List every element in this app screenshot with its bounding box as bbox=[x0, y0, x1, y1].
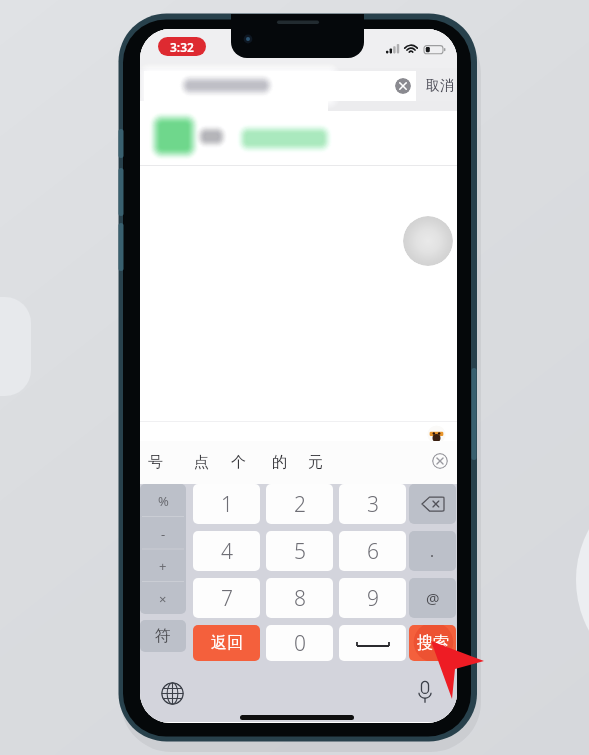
button[interactable]: . bbox=[409, 531, 456, 571]
button[interactable]: % bbox=[140, 484, 186, 517]
staticText: + bbox=[159, 557, 167, 575]
staticText: % bbox=[158, 492, 169, 510]
button[interactable]: 6 bbox=[339, 531, 406, 571]
button[interactable]: Emoji bbox=[427, 425, 446, 444]
staticText: 3 bbox=[367, 490, 379, 519]
staticText: 1 bbox=[221, 490, 233, 519]
button[interactable]: 4 bbox=[193, 531, 260, 571]
button[interactable]: 7 bbox=[193, 578, 260, 618]
button[interactable]: 9 bbox=[339, 578, 406, 618]
staticText: 个 bbox=[231, 453, 246, 472]
button[interactable]: 5 bbox=[266, 531, 333, 571]
button[interactable]: 符 bbox=[140, 620, 186, 652]
button[interactable]: Search field bbox=[144, 71, 416, 101]
button[interactable]: space bbox=[339, 625, 406, 661]
button[interactable]: 元 bbox=[301, 443, 329, 481]
button[interactable]: 取消 bbox=[423, 76, 456, 96]
button[interactable]: 返回 bbox=[193, 625, 260, 661]
staticText: 3:32 bbox=[170, 39, 194, 55]
button[interactable]: 的 bbox=[265, 443, 293, 481]
staticText: 6 bbox=[367, 537, 379, 566]
staticText: 搜索 bbox=[417, 633, 449, 653]
staticText: 4 bbox=[221, 537, 233, 566]
staticText: @ bbox=[426, 588, 440, 608]
button[interactable]: × bbox=[140, 582, 186, 615]
button[interactable]: Profile photo bbox=[403, 216, 453, 266]
staticText: 0 bbox=[294, 629, 306, 658]
button[interactable]: @ bbox=[409, 578, 456, 618]
staticText: 2 bbox=[294, 490, 306, 519]
staticText: × bbox=[159, 590, 167, 608]
staticText: 元 bbox=[308, 453, 323, 472]
button[interactable]: Close candidates bbox=[432, 453, 448, 469]
staticText: 号 bbox=[148, 453, 163, 472]
button[interactable]: 1 bbox=[193, 484, 260, 524]
button[interactable]: bksp bbox=[409, 484, 456, 524]
staticText: 的 bbox=[272, 453, 287, 472]
staticText: 符 bbox=[155, 626, 171, 646]
button[interactable]: Change keyboard bbox=[161, 682, 184, 705]
staticText: 取消 bbox=[426, 77, 454, 95]
button[interactable]: Voice input bbox=[417, 680, 433, 704]
staticText: 7 bbox=[221, 584, 233, 613]
staticText: - bbox=[161, 525, 166, 543]
button[interactable]: 2 bbox=[266, 484, 333, 524]
staticText: 点 bbox=[194, 453, 209, 472]
button[interactable]: 3 bbox=[339, 484, 406, 524]
staticText: 返回 bbox=[211, 633, 243, 653]
staticText: 9 bbox=[367, 584, 379, 613]
staticText: 8 bbox=[294, 584, 306, 613]
button[interactable]: 0 bbox=[266, 625, 333, 661]
staticText: 5 bbox=[294, 537, 306, 566]
button[interactable]: 8 bbox=[266, 578, 333, 618]
button[interactable]: 搜索 bbox=[409, 625, 456, 661]
button[interactable]: 号 bbox=[141, 443, 169, 481]
staticText: . bbox=[430, 541, 435, 561]
button[interactable]: + bbox=[140, 549, 186, 582]
button[interactable]: 个 bbox=[224, 443, 252, 481]
button[interactable]: 点 bbox=[187, 443, 215, 481]
button[interactable]: - bbox=[140, 517, 186, 550]
button[interactable]: Clear text bbox=[395, 78, 411, 94]
